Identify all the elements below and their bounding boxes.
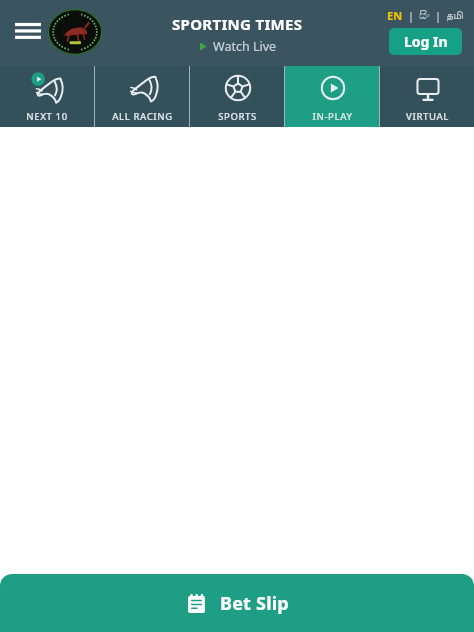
- button[interactable]: IN-PLAY: [285, 66, 379, 127]
- button[interactable]: தமி: [446, 10, 463, 21]
- staticText: Bet Slip: [220, 591, 289, 616]
- button[interactable]: Open menu: [10, 14, 46, 50]
- staticText: Watch Live: [213, 38, 277, 55]
- button[interactable]: Log In: [389, 28, 462, 55]
- staticText: SPORTS: [218, 110, 257, 123]
- staticText: NEXT 10: [26, 110, 68, 123]
- staticText: |: [430, 9, 446, 23]
- button[interactable]: ALL RACING: [95, 66, 189, 127]
- staticText: VIRTUAL: [406, 110, 449, 123]
- button[interactable]: Bet Slip: [0, 574, 474, 632]
- staticText: |: [403, 9, 419, 23]
- button[interactable]: Watch Live: [197, 38, 277, 55]
- staticText: தமி: [446, 10, 463, 21]
- staticText: SPORTING TIMES: [172, 14, 303, 34]
- staticText: IN-PLAY: [312, 110, 353, 123]
- staticText: ALL RACING: [112, 110, 173, 123]
- staticText: Log In: [404, 32, 448, 51]
- button[interactable]: SPORTS: [190, 66, 284, 127]
- button[interactable]: NEXT 10: [0, 66, 94, 127]
- button[interactable]: Sporting Times home: [46, 6, 104, 58]
- button[interactable]: EN: [387, 8, 403, 23]
- button[interactable]: සිං: [419, 10, 430, 21]
- staticText: සිං: [419, 10, 430, 21]
- staticText: EN: [387, 8, 403, 23]
- button[interactable]: VIRTUAL: [380, 66, 474, 127]
